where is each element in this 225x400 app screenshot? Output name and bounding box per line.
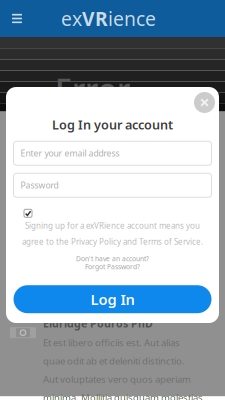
staticText: minima. Mollitia quisquam molestias xyxy=(43,391,203,400)
staticText: Log In xyxy=(90,289,134,309)
staticText: Forgot Password? xyxy=(85,262,140,271)
staticText: Aut voluptates vero quos aperiam xyxy=(43,372,191,386)
button[interactable]: Log In xyxy=(13,285,211,313)
button[interactable]: Password xyxy=(13,173,211,197)
staticText: Password xyxy=(20,179,58,191)
button[interactable]: Close xyxy=(194,92,215,113)
staticText: agree to the Privacy Policy and Terms of… xyxy=(22,236,203,247)
staticText: quae odit ab et deleniti distinctio. xyxy=(43,354,185,367)
staticText: exVRience xyxy=(61,6,156,31)
staticText: Don't have an account? xyxy=(76,254,149,263)
button[interactable]: Accept terms xyxy=(24,209,32,217)
button[interactable]: Enter your email address xyxy=(13,141,211,165)
button[interactable]: Forgot Password? xyxy=(85,262,140,271)
staticText: Signing up for a exVRience account means… xyxy=(25,220,200,231)
button[interactable]: Menu xyxy=(6,6,28,30)
staticText: Et est libero officiis est. Aut alias xyxy=(43,336,180,349)
staticText: Eldridge Pouros PhD xyxy=(43,316,153,331)
staticText: Enter your email address xyxy=(20,147,119,159)
button[interactable]: Don't have an account? xyxy=(76,254,149,263)
staticText: Log In your account xyxy=(52,116,173,133)
staticText: Error xyxy=(55,68,130,110)
